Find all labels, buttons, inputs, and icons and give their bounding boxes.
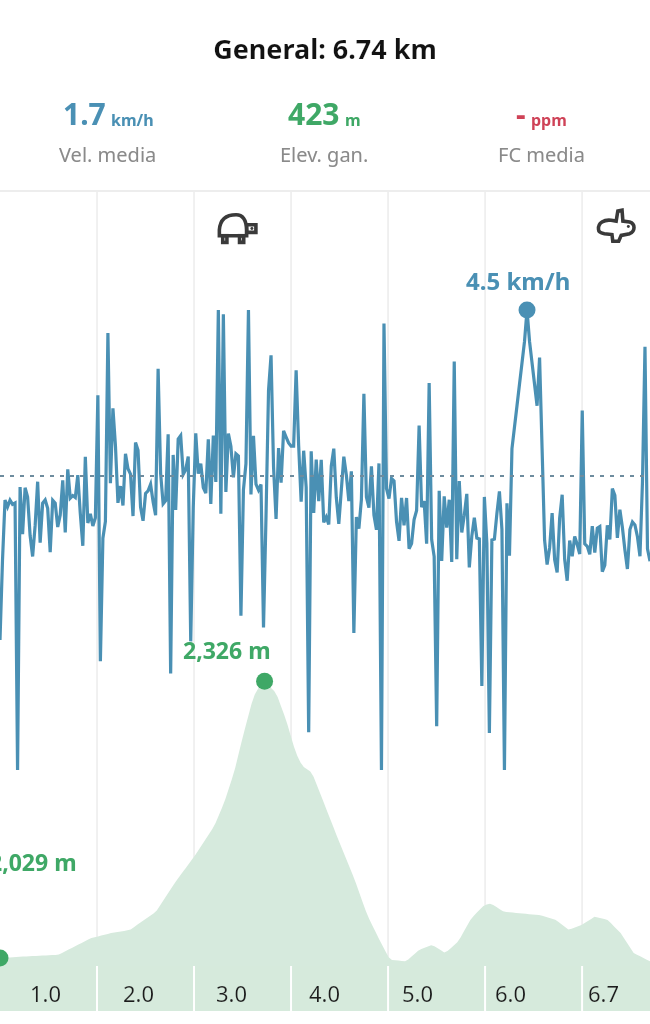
staticText: 2,029 m bbox=[0, 846, 77, 877]
staticText: km/h bbox=[111, 109, 154, 131]
other: Slowest point bbox=[216, 208, 258, 250]
staticText: 6.0 bbox=[495, 978, 527, 1008]
staticText: 1.7 bbox=[63, 93, 106, 134]
staticText: 2,326 m bbox=[183, 634, 271, 665]
staticText: FC media bbox=[498, 141, 585, 168]
button[interactable]: Slowest point bbox=[0, 190, 650, 1024]
button[interactable]: 423 bbox=[216, 93, 433, 168]
other: Fastest point bbox=[596, 206, 638, 248]
staticText: Elev. gan. bbox=[280, 141, 369, 168]
staticText: 4.5 km/h bbox=[466, 264, 571, 297]
staticText: 1.0 bbox=[30, 978, 62, 1008]
staticText: - bbox=[516, 93, 526, 134]
button[interactable]: 1.7 bbox=[0, 93, 216, 168]
staticText: General: 6.74 km bbox=[0, 30, 650, 67]
button[interactable]: - bbox=[433, 93, 650, 168]
staticText: ppm bbox=[531, 109, 567, 131]
staticText: m bbox=[345, 109, 361, 131]
staticText: Vel. media bbox=[59, 141, 157, 168]
staticText: 4.0 bbox=[309, 978, 341, 1008]
staticText: 2.0 bbox=[123, 978, 155, 1008]
staticText: 5.0 bbox=[402, 978, 434, 1008]
staticText: 3.0 bbox=[216, 978, 248, 1008]
staticText: 6.7 bbox=[588, 978, 620, 1008]
staticText: 423 bbox=[288, 93, 340, 134]
